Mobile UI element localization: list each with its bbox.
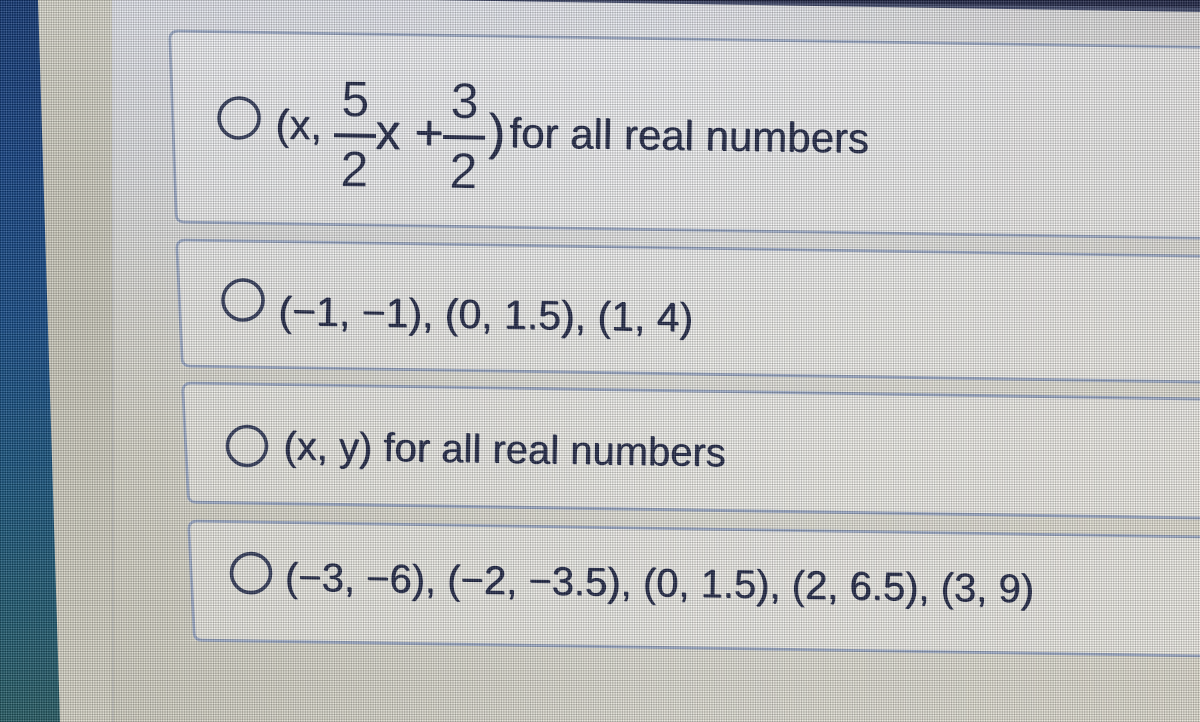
button[interactable]: Multiple choice answers	[0, 0, 1200, 722]
